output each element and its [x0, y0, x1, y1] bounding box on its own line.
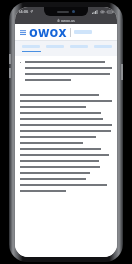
- staticText: OWOX: [29, 25, 67, 40]
- staticText: 14:06: [18, 9, 29, 14]
- button[interactable]: Address bar owox.us: [15, 16, 117, 24]
- button[interactable]: Tab 1: [21, 41, 41, 56]
- button[interactable]: OWOX home: [29, 25, 67, 40]
- button[interactable]: Tab 2: [45, 41, 65, 56]
- button[interactable]: Tab 3: [69, 41, 89, 56]
- staticText: owox.us: [61, 18, 75, 23]
- button[interactable]: Open menu: [19, 28, 27, 36]
- button[interactable]: Tab 4: [93, 41, 113, 56]
